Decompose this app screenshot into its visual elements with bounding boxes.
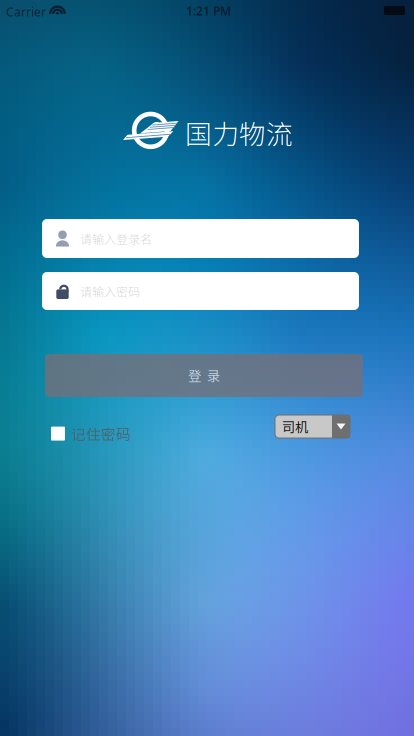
- button[interactable]: 登 录: [45, 354, 363, 397]
- staticText: 司机: [282, 417, 308, 436]
- staticText: 登 录: [188, 366, 220, 385]
- staticText: 1:21 PM: [186, 3, 231, 19]
- button[interactable]: 司机: [275, 415, 350, 438]
- staticText: Carrier: [6, 4, 46, 20]
- staticText: 国力物流: [185, 113, 293, 152]
- staticText: 请输入登录名: [80, 230, 152, 247]
- staticText: 请输入密码: [80, 282, 140, 300]
- button[interactable]: 记住密码: [51, 419, 131, 448]
- staticText: 记住密码: [71, 423, 131, 444]
